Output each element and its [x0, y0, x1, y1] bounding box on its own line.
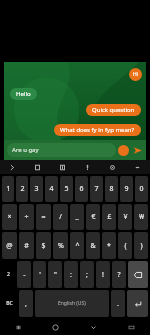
button[interactable]: 8: [105, 176, 118, 202]
button[interactable]: 3: [30, 176, 43, 202]
button[interactable]: 9: [120, 176, 133, 202]
button[interactable]: ": [48, 261, 62, 288]
button[interactable]: 0: [135, 176, 148, 202]
staticText: _: [75, 212, 79, 222]
staticText: English (US): [58, 300, 86, 307]
button[interactable]: ^: [70, 232, 84, 259]
button[interactable]: $: [36, 232, 51, 259]
button[interactable]: 1: [2, 176, 14, 202]
button[interactable]: ;: [80, 261, 94, 288]
button[interactable]: ,: [19, 290, 33, 317]
button[interactable]: ): [134, 232, 148, 259]
button[interactable]: What does fy in fyp mean?: [54, 124, 141, 136]
staticText: 1: [6, 184, 11, 194]
button[interactable]: Recents: [0, 319, 37, 335]
button[interactable]: Send: [132, 145, 143, 156]
staticText: 8: [109, 184, 114, 194]
button[interactable]: GIF: [50, 160, 75, 174]
button[interactable]: Are u gay: [7, 143, 116, 157]
staticText: :: [70, 270, 72, 280]
staticText: 9: [124, 184, 129, 194]
button[interactable]: ': [33, 261, 46, 288]
button[interactable]: *: [102, 232, 116, 259]
staticText: =: [41, 212, 46, 222]
button[interactable]: .: [111, 290, 125, 317]
staticText: ': [39, 270, 41, 280]
button[interactable]: 2: [16, 176, 28, 202]
staticText: €: [91, 212, 96, 222]
staticText: (: [124, 241, 127, 251]
button[interactable]: £: [102, 204, 116, 230]
button[interactable]: 5: [60, 176, 73, 202]
button[interactable]: Keyboard: [112, 319, 150, 335]
button[interactable]: Settings: [100, 160, 125, 174]
staticText: 4: [49, 184, 54, 194]
button[interactable]: %: [53, 232, 68, 259]
staticText: 0: [139, 184, 144, 194]
staticText: 2: [7, 271, 10, 278]
staticText: @: [6, 241, 13, 251]
staticText: ": [54, 270, 57, 280]
button[interactable]: Quick question: [86, 104, 141, 116]
staticText: Hello: [16, 90, 31, 98]
staticText: 7: [94, 184, 99, 194]
button[interactable]: ₩: [134, 204, 148, 230]
staticText: /: [59, 212, 62, 222]
staticText: BC: [6, 300, 13, 307]
button[interactable]: /: [53, 204, 68, 230]
staticText: ^: [75, 241, 80, 251]
staticText: 2: [20, 184, 25, 194]
button[interactable]: :: [64, 261, 78, 288]
button[interactable]: 7: [90, 176, 103, 202]
staticText: ¥: [123, 212, 128, 222]
button[interactable]: -: [17, 261, 31, 288]
button[interactable]: Expand: [0, 160, 25, 174]
staticText: %: [58, 241, 64, 251]
button[interactable]: Stickers: [25, 160, 50, 174]
button[interactable]: _: [70, 204, 84, 230]
staticText: ×: [7, 212, 12, 222]
staticText: £: [107, 212, 112, 222]
button[interactable]: Hello: [10, 88, 37, 100]
button[interactable]: Voice input: [75, 160, 100, 174]
staticText: Are u gay: [12, 146, 39, 154]
button[interactable]: 4: [45, 176, 58, 202]
button[interactable]: Emoji: [118, 145, 129, 156]
button[interactable]: Enter: [127, 290, 148, 317]
button[interactable]: =: [36, 204, 51, 230]
button[interactable]: Hi: [129, 68, 142, 81]
staticText: ÷: [24, 212, 29, 222]
button[interactable]: BC: [2, 290, 17, 317]
button[interactable]: Home: [37, 319, 74, 335]
staticText: .: [117, 299, 119, 309]
button[interactable]: €: [86, 204, 100, 230]
button[interactable]: ×: [2, 204, 17, 230]
button[interactable]: More options: [125, 160, 150, 174]
button[interactable]: English (US): [35, 290, 109, 317]
button[interactable]: 6: [75, 176, 88, 202]
button[interactable]: @: [2, 232, 17, 259]
staticText: Hi: [133, 71, 138, 78]
staticText: What does fy in fyp mean?: [60, 126, 135, 134]
staticText: ?: [117, 270, 121, 280]
staticText: Quick question: [92, 106, 135, 114]
button[interactable]: &: [86, 232, 100, 259]
staticText: *: [107, 241, 111, 251]
button[interactable]: Hide keyboard: [74, 319, 112, 335]
staticText: 5: [64, 184, 69, 194]
button[interactable]: #: [19, 232, 34, 259]
button[interactable]: Backspace: [128, 261, 148, 288]
staticText: $: [41, 241, 46, 251]
button[interactable]: (: [118, 232, 132, 259]
button[interactable]: ÷: [19, 204, 34, 230]
staticText: ,: [25, 299, 27, 309]
staticText: ;: [86, 270, 88, 280]
button[interactable]: ?: [112, 261, 126, 288]
button[interactable]: 2: [2, 261, 15, 288]
staticText: ₩: [139, 212, 144, 222]
staticText: ): [140, 241, 143, 251]
button[interactable]: !: [96, 261, 110, 288]
staticText: &: [90, 241, 96, 251]
button[interactable]: ¥: [118, 204, 132, 230]
staticText: -: [23, 270, 26, 280]
